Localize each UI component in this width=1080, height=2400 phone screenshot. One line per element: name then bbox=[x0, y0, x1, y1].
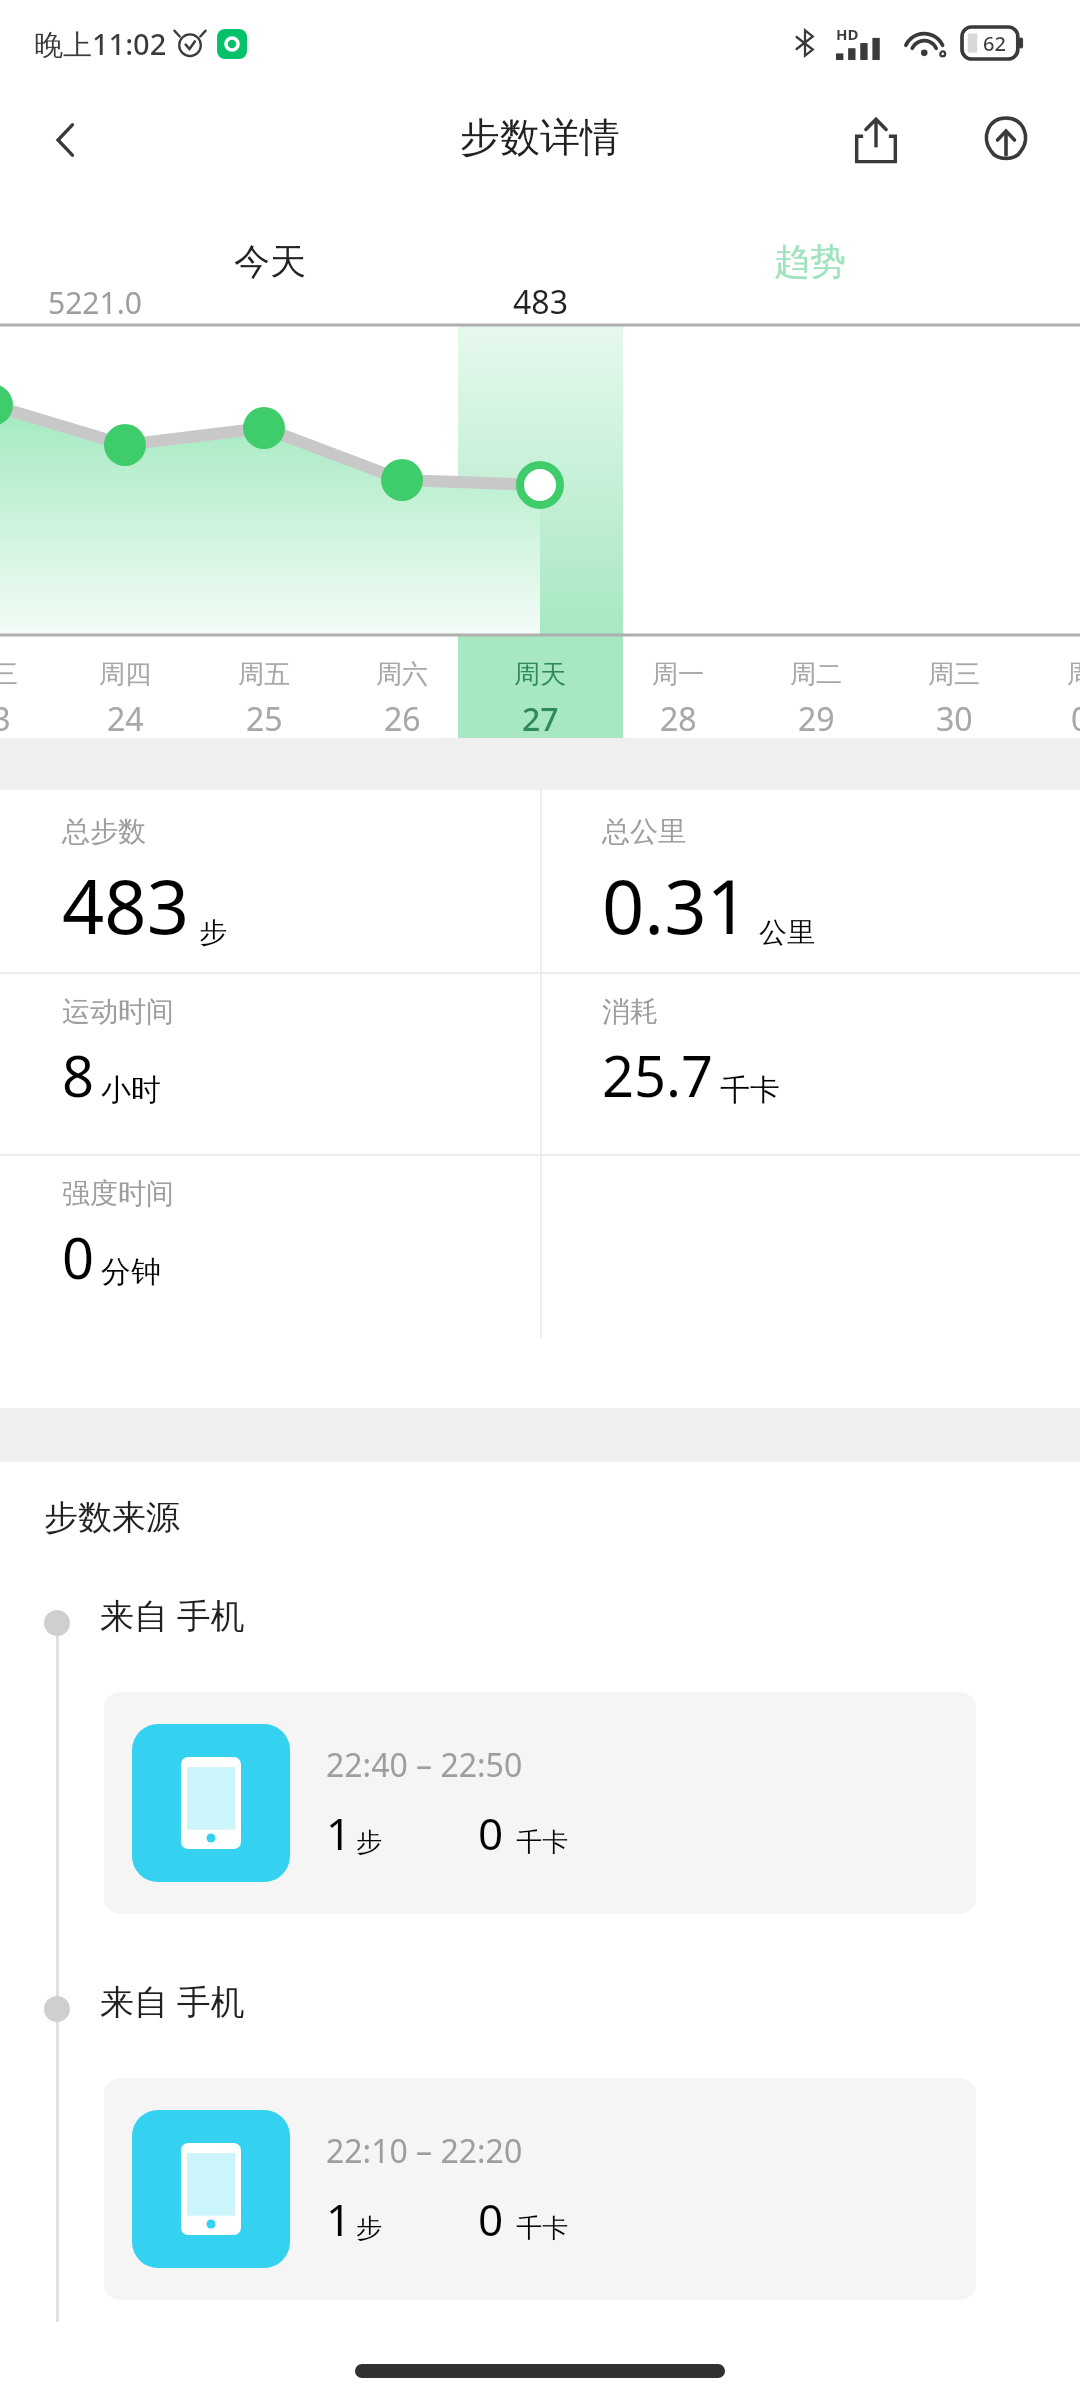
button[interactable]: 趋势 bbox=[540, 218, 1080, 304]
button[interactable]: 22:10 – 22:20 bbox=[104, 2078, 976, 2300]
button[interactable]: 运动时间 bbox=[0, 972, 540, 1154]
button[interactable]: Share bbox=[838, 102, 914, 178]
staticText: 步 bbox=[199, 915, 227, 950]
staticText: 周二 bbox=[790, 658, 842, 691]
staticText: 总公里 bbox=[602, 814, 686, 849]
button[interactable]: 周二 bbox=[734, 658, 898, 741]
staticText: 1 bbox=[326, 2189, 352, 2249]
button[interactable]: 周四 bbox=[43, 658, 207, 741]
staticText: 28 bbox=[660, 697, 697, 741]
staticText: 周五 bbox=[238, 658, 290, 691]
staticText: 26 bbox=[384, 697, 421, 741]
button[interactable]: 周天 bbox=[458, 658, 622, 741]
staticText: 5221.0 bbox=[48, 282, 142, 323]
staticText: 483 bbox=[458, 280, 623, 324]
button[interactable]: 周六 bbox=[320, 658, 484, 741]
staticText: 23 bbox=[0, 697, 11, 741]
staticText: 30 bbox=[936, 697, 973, 741]
staticText: 千卡 bbox=[516, 2212, 568, 2245]
staticText: 周一 bbox=[652, 658, 704, 691]
staticText: 0 bbox=[478, 2189, 504, 2249]
staticText: 62 bbox=[983, 30, 1006, 57]
staticText: 来自 手机 bbox=[100, 1592, 245, 1638]
button[interactable]: 周一 bbox=[596, 658, 760, 741]
staticText: 步 bbox=[356, 1826, 382, 1859]
staticText: 25 bbox=[246, 697, 283, 741]
button[interactable]: Back bbox=[28, 102, 104, 178]
button[interactable]: 强度时间 bbox=[0, 1154, 540, 1336]
button[interactable]: 今天 bbox=[0, 218, 540, 304]
staticText: 步 bbox=[356, 2212, 382, 2245]
button[interactable]: 周三 bbox=[0, 658, 74, 741]
staticText: 0 bbox=[62, 1219, 95, 1295]
staticText: 周 bbox=[1067, 658, 1080, 691]
button[interactable]: 消耗 bbox=[540, 972, 1080, 1154]
button[interactable]: 总公里 bbox=[540, 790, 1080, 972]
staticText: 小时 bbox=[101, 1071, 161, 1109]
staticText: 总步数 bbox=[62, 814, 146, 849]
button[interactable]: 总步数 bbox=[0, 790, 540, 972]
staticText: 0.31 bbox=[602, 855, 749, 956]
staticText: 步数来源 bbox=[44, 1496, 180, 1539]
staticText: 公里 bbox=[759, 915, 815, 950]
staticText: 0 bbox=[1071, 697, 1080, 741]
staticText: 晚上11:02 bbox=[34, 24, 167, 64]
staticText: 0 bbox=[478, 1803, 504, 1863]
staticText: HD bbox=[836, 24, 859, 44]
staticText: 运动时间 bbox=[62, 994, 174, 1029]
staticText: 千卡 bbox=[516, 1826, 568, 1859]
button[interactable]: 周 bbox=[998, 658, 1080, 741]
staticText: 趋势 bbox=[774, 239, 846, 284]
staticText: 22:10 – 22:20 bbox=[326, 2129, 523, 2173]
staticText: 周三 bbox=[928, 658, 980, 691]
staticText: 22:40 – 22:50 bbox=[326, 1743, 523, 1787]
staticText: 消耗 bbox=[602, 994, 658, 1029]
staticText: 27 bbox=[522, 697, 559, 741]
staticText: 25.7 bbox=[602, 1037, 714, 1113]
staticText: 483 bbox=[62, 855, 189, 956]
staticText: 来自 手机 bbox=[100, 1978, 245, 2024]
staticText: 周三 bbox=[0, 658, 18, 691]
staticText: 周天 bbox=[514, 658, 566, 691]
staticText: 29 bbox=[798, 697, 835, 741]
button[interactable]: 周三 bbox=[872, 658, 1036, 741]
staticText: 千卡 bbox=[720, 1071, 780, 1109]
staticText: 周六 bbox=[376, 658, 428, 691]
staticText: 24 bbox=[107, 697, 144, 741]
staticText: 1 bbox=[326, 1803, 352, 1863]
staticText: 强度时间 bbox=[62, 1176, 174, 1211]
button[interactable]: Upload bbox=[968, 102, 1044, 178]
button[interactable]: 周五 bbox=[182, 658, 346, 741]
button[interactable]: 22:40 – 22:50 bbox=[104, 1692, 976, 1914]
staticText: 8 bbox=[62, 1037, 95, 1113]
staticText: 步数详情 bbox=[0, 112, 1080, 162]
staticText: 周四 bbox=[99, 658, 151, 691]
staticText: 今天 bbox=[234, 239, 306, 284]
staticText: 分钟 bbox=[101, 1253, 161, 1291]
